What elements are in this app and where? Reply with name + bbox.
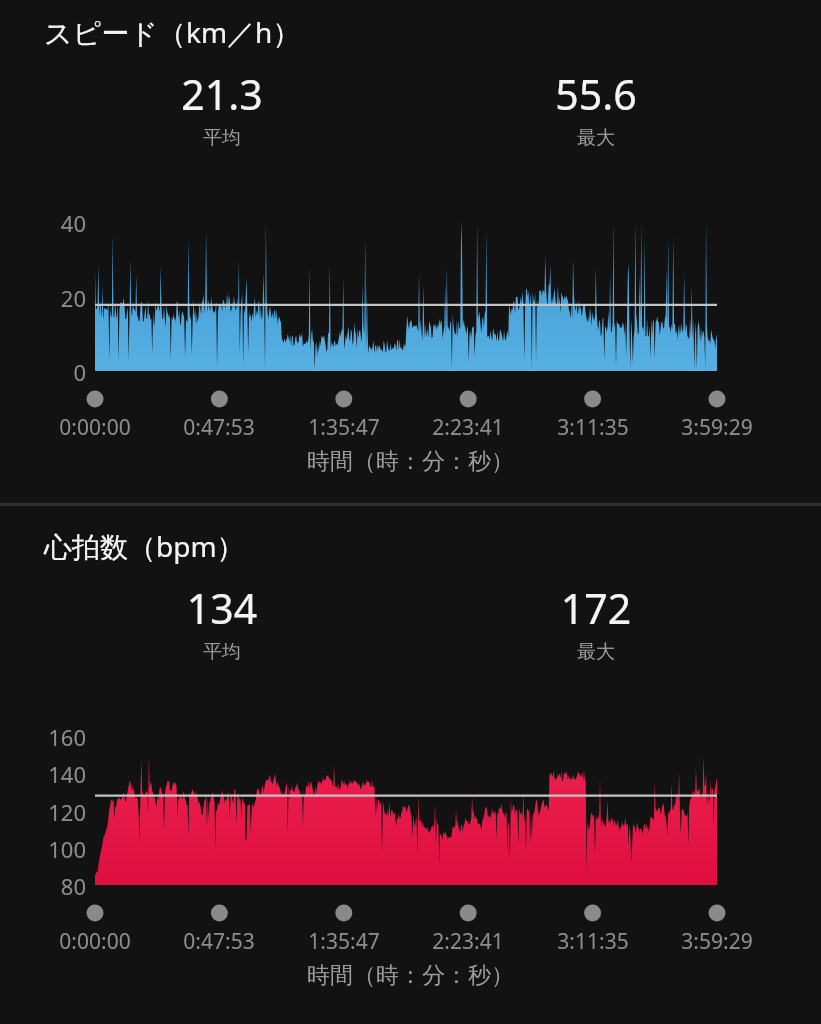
button[interactable]: 心拍数（bpm） xyxy=(0,514,821,1024)
staticText: 3:11:35 xyxy=(531,413,655,442)
staticText: 160 xyxy=(14,722,86,752)
staticText: 時間（時：分：秒） xyxy=(0,961,821,990)
staticText: スピード（km／h） xyxy=(44,13,301,51)
staticText: 0:47:53 xyxy=(157,413,281,442)
staticText: 3:59:29 xyxy=(655,927,779,956)
staticText: 時間（時：分：秒） xyxy=(0,447,821,476)
staticText: 21.3 xyxy=(142,66,302,122)
staticText: 134 xyxy=(142,580,302,636)
staticText: 平均 xyxy=(142,640,302,664)
staticText: 55.6 xyxy=(516,66,676,122)
staticText: 平均 xyxy=(142,126,302,150)
staticText: 80 xyxy=(14,871,86,901)
button[interactable]: スピード（km／h） xyxy=(0,0,821,503)
staticText: 140 xyxy=(14,759,86,789)
staticText: 最大 xyxy=(516,640,676,664)
staticText: 0:00:00 xyxy=(33,413,157,442)
staticText: 1:35:47 xyxy=(282,927,406,956)
staticText: 40 xyxy=(14,208,86,238)
staticText: 心拍数（bpm） xyxy=(44,527,245,565)
staticText: 172 xyxy=(516,580,676,636)
staticText: 2:23:41 xyxy=(406,413,530,442)
staticText: 20 xyxy=(14,283,86,313)
staticText: 3:11:35 xyxy=(531,927,655,956)
staticText: 0 xyxy=(14,357,86,387)
staticText: 0:00:00 xyxy=(33,927,157,956)
staticText: 1:35:47 xyxy=(282,413,406,442)
staticText: 3:59:29 xyxy=(655,413,779,442)
staticText: 最大 xyxy=(516,126,676,150)
staticText: 100 xyxy=(14,834,86,864)
staticText: 0:47:53 xyxy=(157,927,281,956)
staticText: 120 xyxy=(14,797,86,827)
staticText: 2:23:41 xyxy=(406,927,530,956)
